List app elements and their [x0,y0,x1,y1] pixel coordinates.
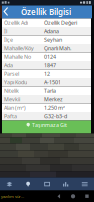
staticText: Merkez [44,96,63,103]
staticText: Alan (m²) [4,104,26,111]
staticText: Nitelik [4,87,19,94]
staticText: 0124 [44,53,56,60]
button[interactable]: Location [19,177,38,190]
staticText: Özellik Adı [4,19,28,26]
staticText: Mahalle No [4,53,31,60]
staticText: Parsel [4,70,19,77]
button[interactable]: Back [2,5,10,18]
staticText: Özellik Değeri [44,19,77,26]
staticText: Adana [44,28,59,35]
staticText: Mevkii [4,96,20,103]
staticText: A-1501 [44,79,61,86]
button[interactable]: Recents [80,190,94,202]
staticText: G32-b3-d [44,113,67,120]
staticText: Çınarlı Mah. [44,45,71,52]
staticText: Yapı Kodu [4,79,27,86]
button[interactable]: Layers [0,177,19,190]
staticText: İl [4,28,7,35]
staticText: 1.250 m² [44,104,65,111]
staticText: Ada [4,62,13,69]
button[interactable]: Measure [56,177,75,190]
staticText: Pafta [4,113,17,120]
button[interactable]: Menu [75,177,94,190]
button[interactable]: Back [52,190,66,202]
staticText: Mahalle/Köy [4,45,34,52]
staticText: Özellik Bilgisi [21,7,71,17]
staticText: 12 [44,70,50,77]
staticText: Seyhan [44,36,62,43]
staticText: İlçe [4,36,13,43]
staticText: Tarla [44,87,56,94]
staticText: 1847 [44,62,56,69]
button[interactable]: Parcel [38,177,56,190]
button[interactable]: Taşınmaza Git [2,120,91,133]
staticText: yazılım sürüm 2.4 [1,194,24,199]
button[interactable]: Home [66,190,80,202]
staticText: Taşınmaza Git [32,121,67,129]
